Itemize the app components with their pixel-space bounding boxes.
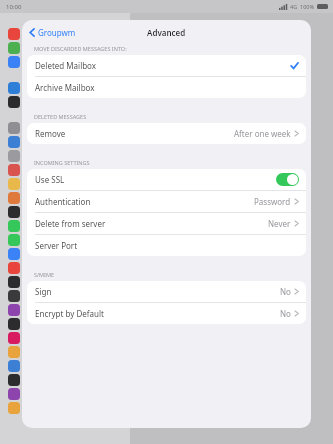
staticText: No bbox=[280, 308, 291, 319]
button[interactable]: Groupwm bbox=[26, 24, 79, 41]
staticText: Use SSL bbox=[35, 174, 65, 185]
staticText: MOVE DISCARDED MESSAGES INTO: bbox=[34, 45, 127, 52]
staticText: Remove bbox=[35, 128, 66, 139]
button[interactable]: Authentication bbox=[27, 191, 306, 212]
staticText: Authentication bbox=[35, 196, 91, 207]
staticText: After one week bbox=[234, 128, 291, 139]
staticText: Password bbox=[254, 196, 291, 207]
staticText: Groupwm bbox=[38, 27, 76, 38]
button[interactable]: Server Port bbox=[27, 235, 306, 256]
button[interactable]: Deleted Mailbox bbox=[27, 55, 306, 76]
staticText: S/MIME bbox=[34, 271, 54, 278]
button[interactable]: Encrypt by Default bbox=[27, 303, 306, 324]
staticText: Delete from server bbox=[35, 218, 106, 229]
button[interactable]: Delete from server bbox=[27, 213, 306, 234]
button[interactable]: Archive Mailbox bbox=[27, 77, 306, 98]
staticText: Archive Mailbox bbox=[35, 82, 95, 93]
button[interactable]: Sign bbox=[27, 281, 306, 302]
staticText: Never bbox=[268, 218, 291, 229]
staticText: 100% bbox=[300, 3, 315, 10]
staticText: DELETED MESSAGES bbox=[34, 113, 87, 120]
staticText: 4G bbox=[290, 3, 298, 10]
staticText: Sign bbox=[35, 286, 52, 297]
button[interactable]: Use SSL toggle, on bbox=[276, 173, 299, 186]
staticText: No bbox=[280, 286, 291, 297]
staticText: 10:00 bbox=[6, 3, 22, 11]
staticText: INCOMING SETTINGS bbox=[34, 159, 90, 166]
button[interactable]: Remove bbox=[27, 123, 306, 144]
staticText: Deleted Mailbox bbox=[35, 60, 97, 71]
staticText: Server Port bbox=[35, 240, 78, 251]
staticText: Advanced bbox=[147, 27, 186, 38]
staticText: Encrypt by Default bbox=[35, 308, 104, 319]
button[interactable]: Use SSL bbox=[27, 169, 306, 190]
